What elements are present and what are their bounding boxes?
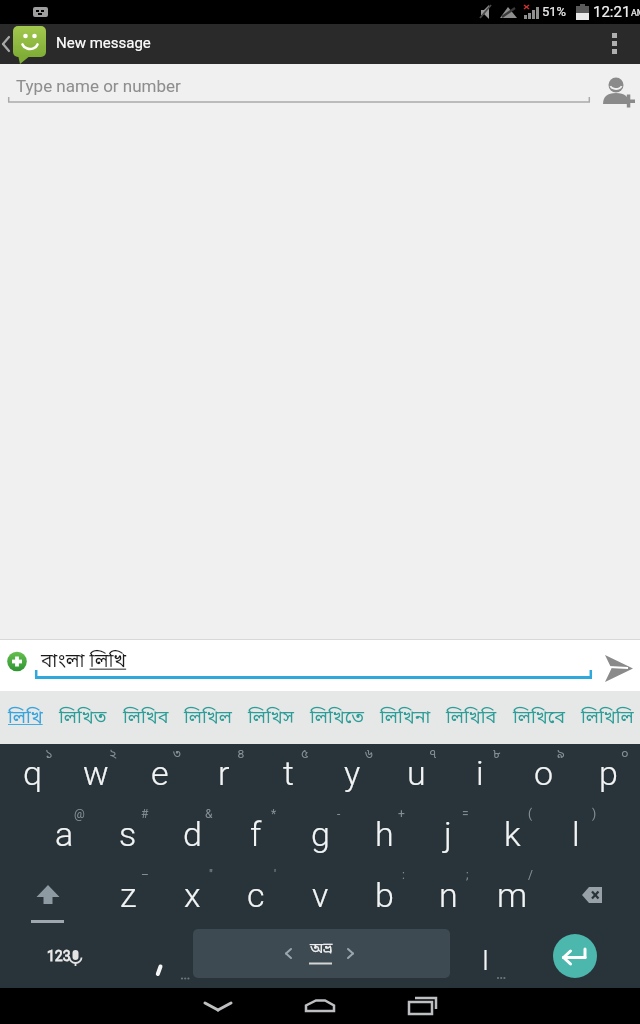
staticText: b [375, 875, 394, 915]
staticText: e [151, 753, 169, 793]
staticText: l [572, 814, 580, 854]
button[interactable] [604, 24, 640, 64]
staticText: o [534, 753, 554, 793]
button[interactable]: c [224, 866, 288, 927]
button[interactable]: Type name or number [0, 64, 640, 112]
button[interactable]: s [96, 805, 160, 866]
button[interactable]: m [480, 866, 544, 927]
button[interactable] [294, 988, 346, 1024]
staticText: ' [274, 868, 277, 882]
staticText: লিখিস [248, 706, 294, 730]
button[interactable]: লিখিতে [310, 691, 364, 744]
button[interactable]: g [288, 805, 352, 866]
button[interactable]: h [352, 805, 416, 866]
button[interactable]: d [160, 805, 224, 866]
button[interactable]: q [0, 744, 64, 805]
button[interactable] [0, 24, 52, 64]
staticText: - [337, 807, 341, 821]
button[interactable]: o [512, 744, 576, 805]
staticText: f [250, 814, 262, 854]
staticText: লিখিবে [513, 706, 565, 730]
staticText: লিখিতে [310, 706, 364, 730]
button[interactable]: z [96, 866, 160, 927]
staticText: a [55, 814, 74, 854]
staticText: ১ [45, 746, 53, 763]
button[interactable]: লিখিত [59, 691, 107, 744]
staticText: AM [631, 8, 640, 19]
button[interactable]: লিখিবি [446, 691, 497, 744]
button[interactable] [596, 66, 640, 110]
staticText: x [184, 875, 201, 915]
button[interactable]: 123 [0, 927, 128, 988]
button[interactable]: t [256, 744, 320, 805]
button[interactable]: f [224, 805, 288, 866]
staticText: * [271, 807, 277, 821]
staticText: ৫ [301, 746, 309, 763]
staticText: y [344, 753, 361, 793]
button[interactable]: লিখি [8, 691, 43, 744]
button[interactable]: অভ্র [193, 929, 450, 978]
staticText: ) [592, 807, 597, 821]
staticText: c [247, 875, 265, 915]
staticText: ০ [621, 746, 629, 763]
button[interactable]: b [352, 866, 416, 927]
staticText: ৮ [493, 746, 501, 763]
button[interactable]: লিখিনা [380, 691, 431, 744]
staticText: ৭ [429, 746, 437, 763]
button[interactable]: লিখিল [184, 691, 232, 744]
button[interactable] [128, 927, 193, 988]
button[interactable]: r [192, 744, 256, 805]
staticText: লিখি [8, 706, 43, 730]
staticText: i [476, 753, 484, 793]
button[interactable]: e [128, 744, 192, 805]
staticText: লিখিনা [380, 706, 431, 730]
button[interactable]: j [416, 805, 480, 866]
button[interactable]: a [32, 805, 96, 866]
button[interactable] [592, 636, 640, 691]
button[interactable]: p [576, 744, 640, 805]
button[interactable] [192, 988, 244, 1024]
staticText: New message [56, 34, 151, 52]
button[interactable]: লিখিব [123, 691, 169, 744]
staticText: = [462, 807, 469, 821]
staticText: ৪ [237, 746, 245, 763]
button[interactable] [0, 866, 96, 927]
staticText: 12:21 [593, 3, 631, 21]
staticText: # [141, 807, 149, 821]
button[interactable]: লিখিবে [513, 691, 565, 744]
staticText: অভ্র [310, 939, 333, 959]
button[interactable]: y [320, 744, 384, 805]
button[interactable] [450, 927, 520, 988]
button[interactable]: লিখিস [248, 691, 294, 744]
button[interactable] [0, 636, 36, 691]
staticText: লিখিল [184, 706, 232, 730]
staticText: s [119, 814, 137, 854]
button[interactable]: i [448, 744, 512, 805]
button[interactable] [553, 934, 597, 978]
staticText: u [407, 753, 426, 793]
staticText: n [439, 875, 458, 915]
staticText: / [528, 868, 533, 882]
staticText: k [504, 814, 521, 854]
staticText: h [375, 814, 394, 854]
staticText: t [283, 753, 294, 793]
button[interactable] [398, 988, 450, 1024]
button[interactable]: লিখিলি [581, 691, 634, 744]
staticText: Type name or number [16, 76, 181, 96]
staticText: ৩ [173, 746, 181, 763]
button[interactable]: k [480, 805, 544, 866]
button[interactable]: u [384, 744, 448, 805]
staticText: z [120, 875, 137, 915]
button[interactable]: n [416, 866, 480, 927]
button[interactable]: w [64, 744, 128, 805]
staticText: @ [74, 807, 85, 821]
staticText: r [218, 753, 230, 793]
staticText: + [398, 807, 405, 821]
staticText: j [444, 814, 452, 854]
button[interactable]: v [288, 866, 352, 927]
button[interactable] [544, 866, 640, 927]
button[interactable]: x [160, 866, 224, 927]
button[interactable]: l [544, 805, 608, 866]
staticText: d [183, 814, 202, 854]
staticText: " [209, 868, 213, 882]
